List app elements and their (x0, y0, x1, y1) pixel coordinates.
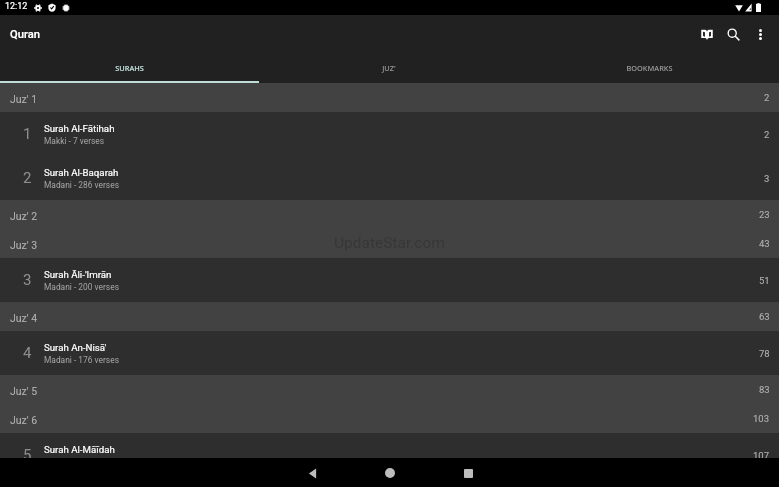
button[interactable]: Bookmark (693, 21, 720, 48)
staticText: Juz' 1 (10, 93, 38, 105)
staticText: Surah Āli-'Imrān (44, 269, 112, 280)
staticText: 12:12 (5, 1, 28, 12)
staticText: Juz' 4 (10, 312, 38, 324)
staticText: 23 (759, 209, 770, 220)
button[interactable]: Juz' 5 (0, 375, 779, 404)
button[interactable]: More options (747, 21, 774, 48)
staticText: 1 (23, 125, 32, 143)
button[interactable]: JUZ' (259, 55, 519, 83)
staticText: Madani - 176 verses (44, 355, 119, 365)
staticText: 78 (759, 348, 770, 359)
staticText: 2 (23, 169, 32, 187)
staticText: Surah An-Nisā' (44, 342, 107, 353)
button[interactable]: Juz' 4 (0, 302, 779, 331)
staticText: 2 (764, 129, 770, 140)
staticText: 63 (759, 311, 770, 322)
button[interactable]: Juz' 1 (0, 83, 779, 112)
button[interactable]: Recents (454, 459, 482, 487)
button[interactable]: BOOKMARKS (519, 55, 779, 83)
button[interactable]: 4 (0, 331, 779, 375)
button[interactable]: 2 (0, 156, 779, 200)
button[interactable]: Juz' 6 (0, 404, 779, 433)
staticText: 43 (759, 238, 770, 249)
button[interactable]: Back (298, 459, 326, 487)
staticText: 51 (759, 275, 770, 286)
staticText: Juz' 5 (10, 385, 38, 397)
button[interactable]: 3 (0, 258, 779, 302)
staticText: Makki - 7 verses (44, 136, 105, 146)
staticText: 4 (23, 344, 32, 362)
staticText: Surah Al-Baqarah (44, 167, 119, 178)
staticText: 103 (753, 413, 770, 424)
button[interactable]: 5 (0, 433, 779, 458)
staticText: 3 (764, 173, 770, 184)
staticText: Madani - 286 verses (44, 180, 119, 190)
button[interactable]: Home (376, 459, 404, 487)
staticText: 107 (753, 450, 770, 458)
button[interactable]: SURAHS (0, 55, 259, 83)
staticText: 2 (764, 92, 770, 103)
staticText: SURAHS (115, 63, 144, 73)
staticText: UpdateStar.com (334, 234, 445, 252)
button[interactable]: 1 (0, 112, 779, 156)
staticText: Surah Al-Māīdah (44, 444, 115, 455)
staticText: Quran (10, 28, 40, 41)
staticText: Juz' 6 (10, 414, 38, 426)
button[interactable]: Search (720, 21, 747, 48)
staticText: Juz' 2 (10, 210, 38, 222)
staticText: Madani - 200 verses (44, 282, 119, 292)
staticText: 3 (23, 271, 32, 289)
staticText: BOOKMARKS (626, 63, 673, 73)
button[interactable]: Juz' 3 (0, 229, 779, 258)
staticText: Surah Al-Fātihah (44, 123, 115, 134)
staticText: 5 (23, 446, 32, 458)
staticText: JUZ' (382, 63, 396, 73)
staticText: 83 (759, 384, 770, 395)
button[interactable]: Juz' 2 (0, 200, 779, 229)
staticText: Juz' 3 (10, 239, 38, 251)
